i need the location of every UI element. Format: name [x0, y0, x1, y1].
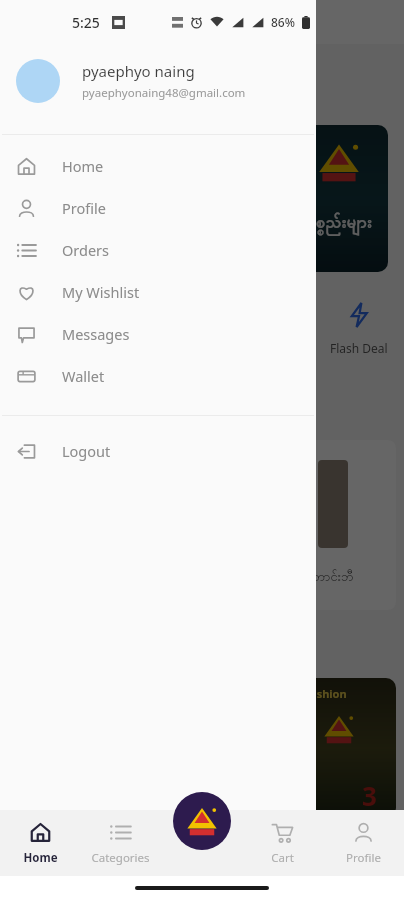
button[interactable]: Orders	[0, 229, 316, 271]
button[interactable]: My Wishlist	[0, 271, 316, 313]
staticText: Cart	[271, 850, 294, 866]
staticText: 86%	[271, 14, 295, 30]
staticText: 3	[362, 778, 377, 813]
button[interactable]: Cart	[242, 810, 323, 876]
staticText: pyaephyonaing48@gmail.com	[82, 85, 246, 101]
staticText: Fashion	[304, 686, 347, 701]
staticText: 5:25	[72, 13, 100, 32]
button[interactable]: Home	[0, 145, 316, 187]
staticText: Messages	[62, 324, 130, 344]
staticText: Categories	[91, 850, 150, 866]
button[interactable]: Messages	[0, 313, 316, 355]
staticText: My Wishlist	[62, 282, 140, 302]
button[interactable]: Profile	[0, 187, 316, 229]
staticText: Logout	[62, 441, 111, 461]
button[interactable]: Wallet	[0, 355, 316, 397]
staticText: Home	[62, 156, 104, 176]
staticText: မြန်မာ့ပစ္စည်းများ	[266, 211, 373, 236]
staticText: Profile	[346, 850, 381, 866]
button[interactable]: pyaephyo naing	[0, 44, 316, 118]
staticText: Home	[23, 850, 58, 866]
button[interactable]: Profile	[323, 810, 404, 876]
button[interactable]: Categories	[80, 810, 161, 876]
button[interactable]: Open shop home	[173, 792, 231, 850]
staticText: Flash Deal	[330, 340, 388, 356]
staticText: Orders	[62, 240, 110, 260]
staticText: Wallet	[62, 366, 105, 386]
staticText: ဘောင်းဘီ	[306, 568, 354, 587]
staticText: pyaephyo naing	[82, 61, 195, 81]
staticText: Profile	[62, 198, 106, 218]
button[interactable]: Home	[0, 810, 80, 876]
button[interactable]: Logout	[0, 430, 316, 472]
